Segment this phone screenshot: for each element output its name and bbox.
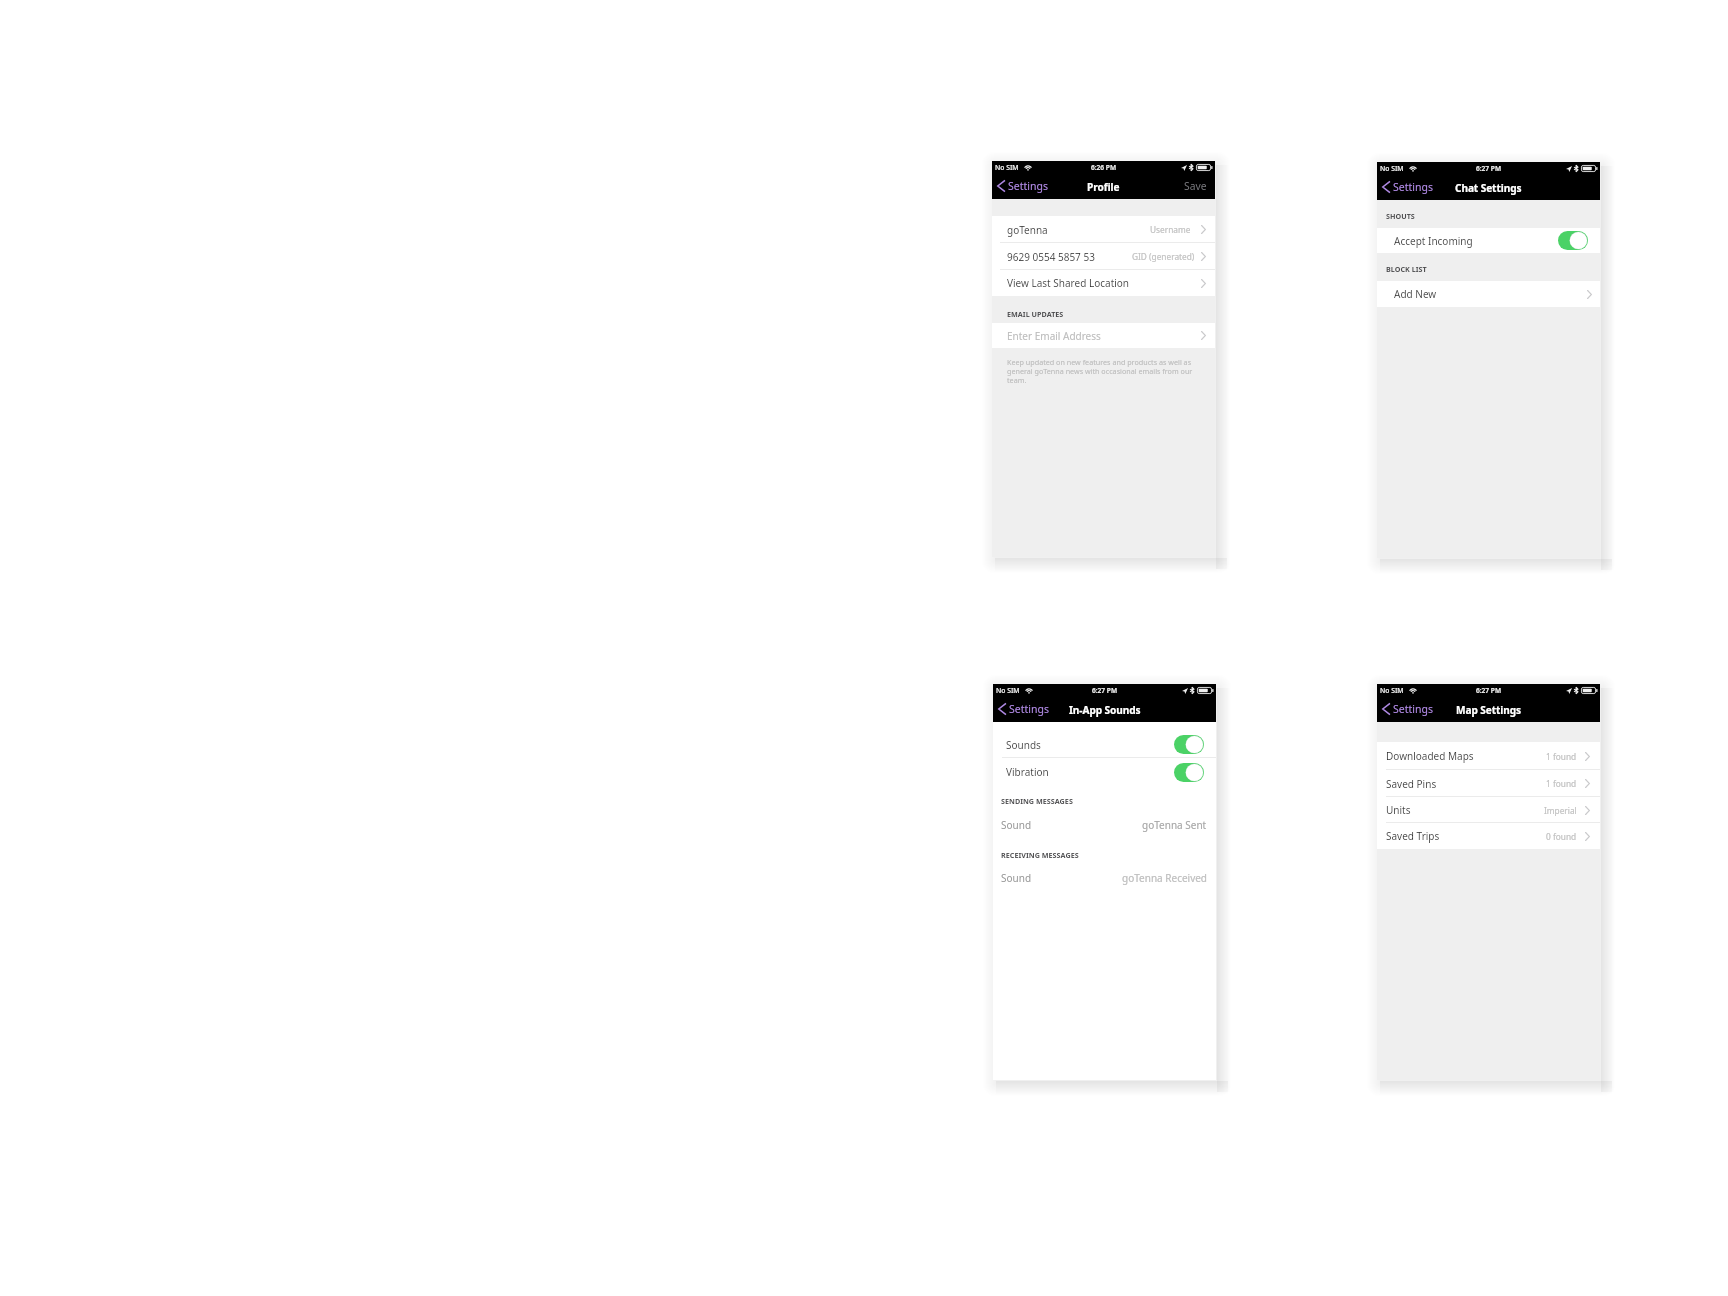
staticText: Settings [1009,702,1049,716]
staticText: Saved Pins [1386,777,1437,791]
staticText: Downloaded Maps [1386,749,1474,763]
staticText: Units [1386,803,1411,817]
staticText: No SIM [1380,164,1404,173]
button[interactable]: Add New [1377,281,1600,307]
staticText: Accept Incoming [1394,234,1473,248]
staticText: No SIM [995,163,1019,172]
staticText: View Last Shared Location [1007,276,1130,290]
button[interactable]: Saved Trips [1377,823,1600,849]
button[interactable]: Save [1179,173,1215,199]
staticText: goTenna Received [1122,871,1208,885]
staticText: BLOCK LIST [1386,264,1427,274]
button[interactable]: Accept Incoming [1377,228,1600,253]
staticText: 1 found [1546,751,1577,762]
staticText: SHOUTS [1386,211,1415,221]
staticText: goTenna [1007,223,1048,237]
staticText: In-App Sounds [1069,703,1141,717]
button[interactable]: Sounds toggle [1174,735,1204,754]
staticText: Settings [1008,179,1048,193]
staticText: GID (generated) [1132,251,1195,262]
staticText: Add New [1394,287,1437,301]
button[interactable]: Vibration toggle [1174,763,1204,782]
staticText: Enter Email Address [1007,329,1101,343]
button[interactable]: Downloaded Maps [1377,742,1600,770]
staticText: Settings [1393,180,1433,194]
button[interactable]: Back to Settings [993,696,1054,722]
staticText: Vibration [1006,765,1049,779]
staticText: SENDING MESSAGES [1001,796,1073,806]
staticText: No SIM [1380,686,1404,695]
staticText: Imperial [1544,805,1577,816]
button[interactable]: Sound [993,863,1216,888]
button[interactable]: Enter Email Address [992,323,1215,348]
staticText: Sound [1001,871,1032,885]
button[interactable]: Saved Pins [1377,770,1600,797]
button[interactable]: Accept Incoming toggle [1558,231,1588,250]
staticText: Profile [1087,180,1120,194]
button[interactable]: 9629 0554 5857 53 [992,243,1215,270]
staticText: RECEIVING MESSAGES [1001,850,1079,860]
staticText: goTenna Sent [1142,818,1207,832]
staticText: Saved Trips [1386,829,1440,843]
button[interactable]: Units [1377,797,1600,823]
staticText: 6:27 PM [1476,686,1502,695]
button[interactable]: Back to Settings [1377,174,1438,200]
button[interactable]: Back to Settings [1377,696,1438,722]
button[interactable]: goTenna [992,216,1215,243]
staticText: 9629 0554 5857 53 [1007,250,1095,264]
staticText: No SIM [996,686,1020,695]
button[interactable]: Vibration [993,758,1216,786]
button[interactable]: Back to Settings [992,173,1053,199]
staticText: Chat Settings [1455,181,1522,195]
staticText: 0 found [1546,831,1577,842]
staticText: Save [1184,179,1207,193]
staticText: 6:27 PM [1092,686,1118,695]
button[interactable]: Sounds [993,731,1216,758]
staticText: Sounds [1006,738,1041,752]
staticText: EMAIL UPDATES [1007,309,1064,319]
staticText: Sound [1001,818,1032,832]
staticText: 6:27 PM [1476,164,1502,173]
staticText: 1 found [1546,778,1577,789]
staticText: 6:26 PM [1091,163,1117,172]
staticText: Settings [1393,702,1433,716]
staticText: Map Settings [1456,703,1521,717]
staticText: Keep updated on new features and product… [1007,357,1197,385]
button[interactable]: View Last Shared Location [992,270,1215,296]
button[interactable]: Sound [993,809,1216,837]
staticText: Username [1150,224,1191,235]
